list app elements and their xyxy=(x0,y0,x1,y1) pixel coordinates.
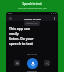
button[interactable]: English (US) xyxy=(24,21,40,26)
staticText: speech to text xyxy=(9,41,34,46)
staticText: Speech to text xyxy=(22,2,42,6)
button[interactable]: This app can xyxy=(9,26,55,52)
button[interactable]: Menu xyxy=(6,15,58,21)
staticText: Turn your voice into text, fast xyxy=(18,7,47,10)
button[interactable]: Copy xyxy=(14,60,20,66)
staticText: Tap to talk xyxy=(27,53,37,56)
staticText: Speech To Text xyxy=(24,17,41,20)
button[interactable]: Start listening xyxy=(27,58,38,69)
button[interactable]: Menu xyxy=(8,16,12,20)
staticText: easily xyxy=(9,31,19,36)
staticText: English (US) xyxy=(26,22,38,25)
staticText: listen. Do your xyxy=(9,36,34,41)
staticText: This app can xyxy=(9,26,30,31)
button[interactable]: More options xyxy=(52,16,56,20)
button[interactable]: Share xyxy=(44,60,50,66)
